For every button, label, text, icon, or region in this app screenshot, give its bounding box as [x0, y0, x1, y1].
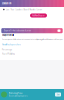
- staticText: Education: [2, 2, 11, 5]
- staticText: Win Exciting Prizes: [8, 92, 22, 94]
- staticText: Year of Publishing: [2, 53, 15, 55]
- staticText: Lorem ipsum dolor sit amet consectetur a…: [2, 38, 63, 40]
- staticText: Chapter 1 — Introduction to Lorem: [3, 30, 31, 32]
- button[interactable]: View all the chapters here: [2, 43, 21, 46]
- button[interactable]: Add New Chapter: [30, 13, 47, 18]
- staticText: Last Year Leaders Board Results Lorem: [6, 8, 43, 11]
- button[interactable]: Join: [55, 92, 61, 97]
- staticText: Join: [56, 93, 59, 96]
- staticText: Add New Chapter: [32, 14, 45, 17]
- button[interactable]: Options: [57, 29, 60, 32]
- staticText: By completing chapters: [8, 95, 27, 97]
- staticText: Percentage: [2, 49, 12, 51]
- staticText: Chapter Details: [2, 34, 14, 36]
- staticText: View all the chapters here: [2, 43, 21, 46]
